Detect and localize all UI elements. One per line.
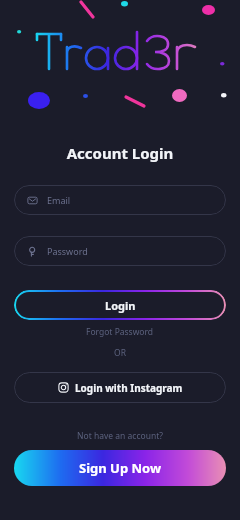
staticText: Email	[47, 194, 71, 206]
button[interactable]: Login	[14, 290, 226, 320]
button[interactable]: Email	[14, 185, 226, 215]
staticText: Password	[47, 245, 88, 257]
staticText: Sign Up Now	[79, 459, 162, 477]
button[interactable]: Sign Up Now	[14, 450, 226, 486]
staticText: OR	[14, 347, 226, 359]
button[interactable]: Password	[14, 236, 226, 266]
button[interactable]: Forgot Password	[14, 326, 226, 338]
button[interactable]: Login with Instagram	[14, 372, 226, 403]
staticText: Account Login	[14, 143, 226, 163]
staticText: Forgot Password	[86, 326, 154, 338]
staticText: Login with Instagram	[75, 381, 183, 395]
staticText: Login	[105, 298, 136, 313]
staticText: Not have an account?	[14, 430, 226, 442]
